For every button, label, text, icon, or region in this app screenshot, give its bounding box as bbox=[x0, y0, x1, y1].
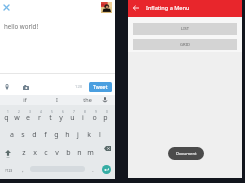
staticText: 3 bbox=[29, 110, 31, 114]
staticText: o bbox=[92, 113, 97, 123]
staticText: e bbox=[26, 113, 30, 123]
staticText: j bbox=[77, 130, 79, 140]
button[interactable]: Back bbox=[131, 3, 141, 13]
staticText: m bbox=[87, 148, 94, 158]
staticText: f bbox=[44, 130, 47, 140]
staticText: i bbox=[82, 113, 84, 123]
staticText: y bbox=[59, 113, 63, 123]
staticText: . bbox=[92, 167, 94, 174]
staticText: t bbox=[49, 113, 52, 123]
button[interactable]: Shift bbox=[3, 149, 13, 159]
staticText: r bbox=[38, 113, 41, 123]
button[interactable]: Symbols bbox=[2, 165, 15, 175]
staticText: x bbox=[33, 148, 37, 158]
staticText: a bbox=[10, 130, 14, 140]
staticText: 2 bbox=[18, 110, 20, 114]
staticText: p bbox=[103, 113, 108, 123]
button[interactable]: Add location bbox=[2, 82, 12, 92]
staticText: the bbox=[83, 96, 92, 103]
staticText: if bbox=[23, 96, 27, 103]
staticText: b bbox=[66, 148, 71, 158]
staticText: 6 bbox=[62, 110, 64, 114]
staticText: LIST bbox=[181, 26, 190, 32]
button[interactable]: LIST bbox=[133, 23, 237, 35]
staticText: 7 bbox=[73, 110, 75, 114]
button[interactable]: Profile bbox=[101, 2, 112, 13]
staticText: 9 bbox=[95, 110, 97, 114]
staticText: 128 bbox=[75, 84, 83, 90]
staticText: g bbox=[54, 130, 59, 140]
button[interactable]: Add photo bbox=[21, 82, 31, 92]
button[interactable]: Tweet bbox=[89, 82, 112, 92]
button[interactable]: Backspace bbox=[102, 143, 112, 153]
staticText: 0 bbox=[106, 110, 108, 114]
staticText: 8 bbox=[84, 110, 86, 114]
staticText: Inflating a Menu bbox=[146, 4, 190, 12]
staticText: Document bbox=[176, 151, 197, 157]
staticText: c bbox=[44, 148, 48, 158]
staticText: l bbox=[99, 130, 101, 140]
staticText: GRID bbox=[180, 42, 190, 48]
staticText: k bbox=[87, 130, 91, 140]
staticText: , bbox=[22, 167, 24, 174]
button[interactable]: Enter bbox=[102, 165, 111, 174]
staticText: ?123 bbox=[5, 168, 13, 173]
staticText: 1 bbox=[7, 110, 9, 114]
staticText: s bbox=[21, 130, 25, 140]
staticText: I bbox=[56, 96, 58, 103]
staticText: d bbox=[32, 130, 37, 140]
staticText: v bbox=[55, 148, 59, 158]
staticText: q bbox=[4, 113, 9, 123]
staticText: hello world! bbox=[4, 22, 39, 30]
staticText: z bbox=[22, 148, 26, 158]
button[interactable]: GRID bbox=[133, 39, 237, 50]
staticText: 5 bbox=[51, 110, 53, 114]
staticText: Tweet bbox=[93, 84, 108, 91]
staticText: n bbox=[77, 148, 82, 158]
staticText: h bbox=[65, 130, 70, 140]
staticText: u bbox=[70, 113, 75, 123]
button[interactable]: Close bbox=[2, 3, 11, 12]
staticText: 4 bbox=[40, 110, 42, 114]
staticText: w bbox=[14, 113, 20, 123]
